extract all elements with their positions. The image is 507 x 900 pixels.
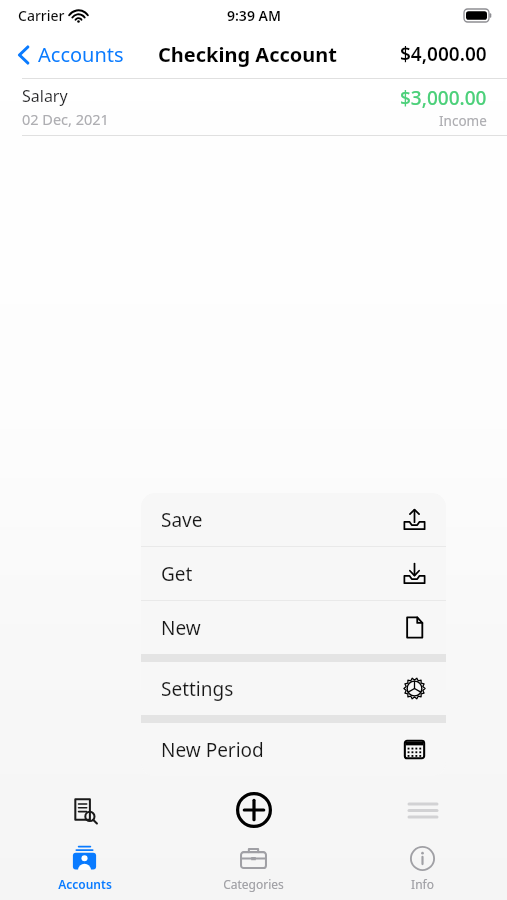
staticText: Get	[161, 561, 193, 587]
staticText: 02 Dec, 2021	[22, 109, 109, 129]
staticText: Checking Account	[158, 41, 337, 68]
button[interactable]: Get	[141, 547, 446, 600]
staticText: Save	[161, 507, 203, 533]
button[interactable]: Salary	[0, 79, 507, 135]
button[interactable]: Menu	[399, 792, 447, 829]
staticText: Carrier	[18, 6, 65, 25]
button[interactable]: Accounts	[0, 838, 169, 900]
staticText: Accounts	[38, 41, 124, 68]
button[interactable]: Settings	[141, 662, 446, 715]
staticText: New Period	[161, 737, 264, 763]
staticText: Income	[439, 112, 487, 130]
button[interactable]: Categories	[169, 838, 338, 900]
staticText: New	[161, 615, 201, 641]
button[interactable]: Accounts	[14, 37, 128, 72]
staticText: Info	[411, 876, 434, 892]
button[interactable]: Add	[228, 784, 280, 836]
staticText: Salary	[22, 85, 68, 107]
button[interactable]: New	[141, 601, 446, 654]
staticText: Accounts	[58, 876, 112, 892]
button[interactable]: New Period	[141, 723, 446, 776]
staticText: $3,000.00	[400, 85, 487, 111]
staticText: $4,000.00	[400, 41, 487, 67]
button[interactable]: Info	[338, 838, 507, 900]
staticText: Settings	[161, 676, 234, 702]
staticText: 9:39 AM	[227, 6, 281, 25]
button[interactable]: Search documents	[61, 787, 108, 834]
button[interactable]: Save	[141, 493, 446, 546]
staticText: Categories	[223, 876, 284, 892]
